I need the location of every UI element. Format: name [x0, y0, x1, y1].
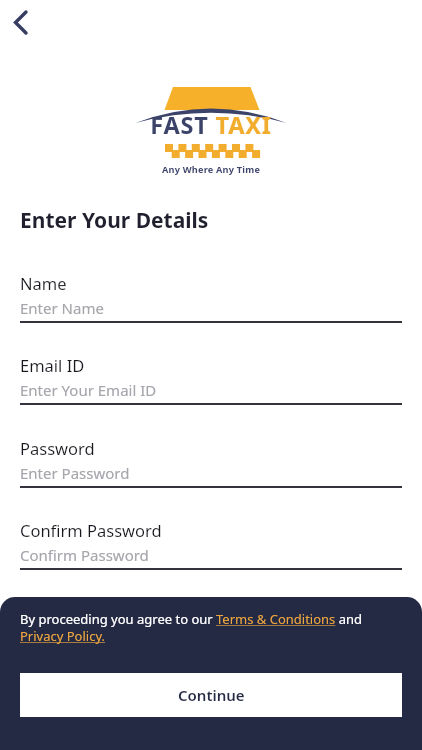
- staticText: Enter Your Email ID: [20, 380, 157, 400]
- staticText: Confirm Password: [20, 545, 149, 565]
- staticText: By proceeding you agree to our Terms & C…: [20, 610, 402, 645]
- staticText: Email ID: [20, 354, 85, 376]
- staticText: Enter Name: [20, 298, 104, 318]
- button[interactable]: Continue: [20, 673, 402, 717]
- button[interactable]: [0, 2, 40, 42]
- staticText: Continue: [178, 685, 245, 705]
- staticText: Name: [20, 272, 67, 294]
- button[interactable]: [20, 460, 402, 488]
- staticText: Enter Your Details: [20, 206, 209, 235]
- staticText: FAST TAXI: [0, 109, 422, 141]
- button[interactable]: [20, 542, 402, 570]
- button[interactable]: [20, 377, 402, 405]
- staticText: Enter Password: [20, 463, 130, 483]
- staticText: Password: [20, 437, 95, 459]
- button[interactable]: [20, 295, 402, 323]
- staticText: Any Where Any Time: [0, 163, 422, 176]
- staticText: Confirm Password: [20, 519, 162, 541]
